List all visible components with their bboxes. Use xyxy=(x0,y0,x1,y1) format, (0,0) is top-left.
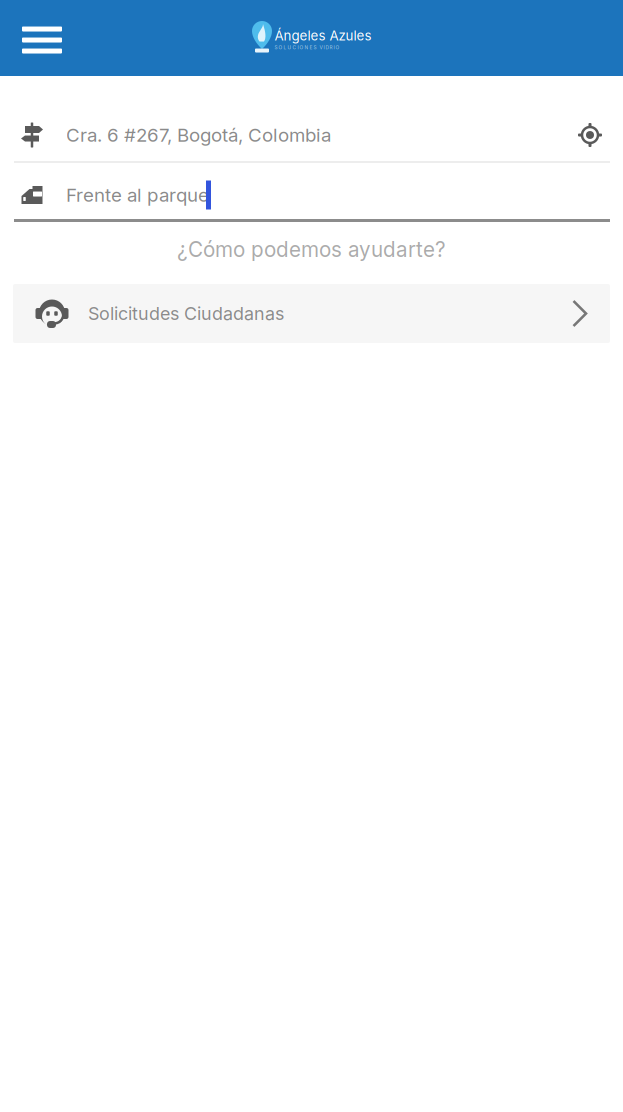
staticText: Ángeles Azules xyxy=(274,27,371,44)
staticText: Solicitudes Ciudadanas xyxy=(88,303,284,324)
button[interactable]: Menu xyxy=(0,0,78,76)
staticText: Frente al parque xyxy=(66,184,209,206)
staticText: Cra. 6 #267, Bogotá, Colombia xyxy=(66,124,331,146)
staticText: ¿Cómo podemos ayudarte? xyxy=(177,237,446,262)
staticText: S O L U C I O N E S V I D R I O xyxy=(274,45,339,50)
button[interactable]: Frente al parque xyxy=(11,171,623,219)
button[interactable]: Use current location xyxy=(564,109,616,161)
button[interactable]: Cra. 6 #267, Bogotá, Colombia xyxy=(11,109,564,161)
button[interactable]: Solicitudes Ciudadanas xyxy=(13,284,610,343)
